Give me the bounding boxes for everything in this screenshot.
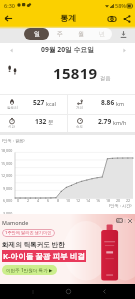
button[interactable]: Next day <box>119 45 129 55</box>
button[interactable]: Mamonde <box>0 214 135 284</box>
staticText: 6,000 <box>3 198 13 203</box>
staticText: 6:30 <box>4 2 15 9</box>
staticText: 22 <box>126 198 131 203</box>
staticText: 화제의 틱톡커도 반한 <box>2 240 65 249</box>
staticText: 속도 <box>76 125 84 130</box>
staticText: 9,000 <box>3 186 13 191</box>
staticText: 58% <box>115 2 126 9</box>
staticText: 3,000 <box>3 211 13 216</box>
staticText: 주 <box>57 30 63 38</box>
staticText: 걸음 <box>100 75 111 82</box>
staticText: 12 <box>76 198 81 203</box>
button[interactable]: Home <box>57 284 79 299</box>
staticText: 8.86 <box>101 98 115 107</box>
staticText: 10 <box>66 198 71 203</box>
staticText: 18,000 <box>1 148 13 153</box>
staticText: 6 <box>47 198 50 203</box>
staticText: 15,000 <box>1 161 13 166</box>
staticText: 2 <box>27 198 30 203</box>
button[interactable]: 시간 <box>0 115 67 132</box>
staticText: 일 <box>34 30 40 38</box>
staticText: 09월 20일 수요일 <box>41 45 95 54</box>
staticText: 년 <box>99 30 105 38</box>
staticText: 1주만에 달라진 생기미인 <box>5 230 52 236</box>
staticText: 0 <box>17 198 20 203</box>
button[interactable]: 주 <box>49 28 70 40</box>
staticText: 4 <box>37 198 40 203</box>
staticText: 분 <box>48 119 54 126</box>
staticText: 월 <box>78 30 84 38</box>
staticText: 거리 <box>76 106 84 111</box>
staticText: 2.79 <box>98 117 112 126</box>
staticText: 8 <box>57 198 60 203</box>
staticText: 15819 <box>53 63 98 83</box>
staticText: (단위 : 시간) <box>109 203 132 209</box>
staticText: 527 <box>33 98 45 107</box>
button[interactable]: 년 <box>91 28 112 40</box>
staticText: 칼로리 <box>7 106 18 111</box>
staticText: 18 <box>106 198 111 203</box>
staticText: AD <box>117 218 122 223</box>
button[interactable]: Back <box>93 284 115 299</box>
staticText: kcal <box>46 100 56 107</box>
staticText: 시간 <box>8 125 16 130</box>
button[interactable]: 속도 <box>68 115 135 132</box>
button[interactable]: Close ad <box>127 218 132 223</box>
button[interactable]: Previous day <box>6 45 16 55</box>
staticText: (단위 : 걸음) <box>2 138 25 144</box>
staticText: 통계 <box>60 13 76 23</box>
staticText: Mamonde <box>2 219 29 226</box>
button[interactable]: 거리 <box>68 95 135 114</box>
staticText: 14 <box>86 198 91 203</box>
staticText: 12,000 <box>1 173 13 178</box>
staticText: K-아이돌 꿀광 피부 비결 <box>3 251 85 261</box>
staticText: 20 <box>116 198 121 203</box>
button[interactable]: Camera <box>104 11 119 26</box>
staticText: 이번주 1만원더 특가 ▶ <box>6 267 53 273</box>
staticText: 16 <box>96 198 101 203</box>
button[interactable]: 이번주 1만원더 특가 ▶ <box>6 265 53 275</box>
staticText: | <box>124 218 126 223</box>
button[interactable]: Back <box>0 10 16 26</box>
staticText: 132 <box>35 117 47 126</box>
button[interactable]: 칼로리 <box>0 95 67 114</box>
staticText: km <box>116 100 124 107</box>
button[interactable]: Share <box>119 11 134 26</box>
button[interactable]: Download <box>118 29 129 40</box>
button[interactable]: 일 <box>24 28 49 40</box>
staticText: km/h <box>113 119 127 126</box>
button[interactable]: 월 <box>70 28 91 40</box>
